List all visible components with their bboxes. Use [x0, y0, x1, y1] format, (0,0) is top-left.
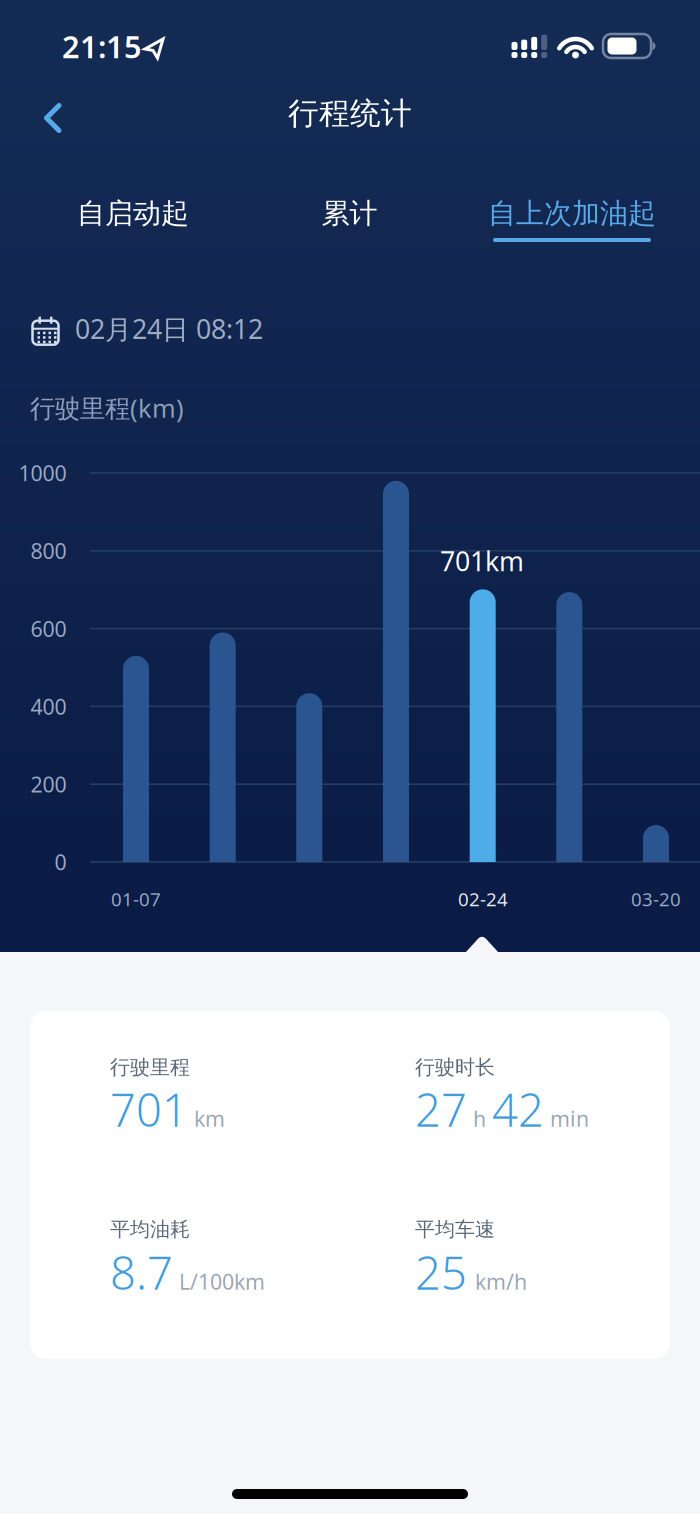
staticText: 平均车速: [415, 1217, 495, 1242]
staticText: 自启动起: [77, 196, 189, 231]
button[interactable]: 累计: [321, 196, 377, 231]
staticText: 行驶时长: [415, 1055, 495, 1080]
staticText: 0: [54, 848, 66, 876]
staticText: 累计: [321, 196, 377, 231]
staticText: km: [194, 1104, 225, 1132]
staticText: 8.7: [110, 1242, 173, 1302]
staticText: 400: [30, 692, 66, 720]
staticText: km/h: [475, 1267, 527, 1295]
staticText: min: [550, 1104, 589, 1132]
staticText: 自上次加油起: [488, 196, 656, 231]
staticText: 21:15: [62, 26, 142, 67]
staticText: 行驶里程: [110, 1055, 190, 1080]
button[interactable]: 自启动起: [77, 196, 189, 231]
staticText: 600: [30, 614, 66, 643]
staticText: 02-24: [458, 887, 508, 911]
staticText: 27: [415, 1079, 467, 1139]
staticText: 200: [30, 770, 66, 798]
staticText: 701: [110, 1079, 188, 1139]
staticText: 42: [492, 1079, 544, 1139]
button[interactable]: 02月24日 08:12: [0, 311, 700, 346]
staticText: 03-20: [631, 887, 681, 911]
staticText: 25: [415, 1242, 467, 1302]
staticText: 701km: [440, 543, 524, 579]
staticText: 行驶里程(km): [30, 391, 184, 425]
staticText: 1000: [18, 459, 66, 487]
staticText: 平均油耗: [110, 1217, 190, 1242]
staticText: 02月24日 08:12: [75, 311, 263, 346]
staticText: L/100km: [179, 1267, 265, 1295]
staticText: 800: [30, 537, 66, 565]
button[interactable]: Back: [43, 103, 63, 133]
button[interactable]: 自上次加油起: [488, 196, 656, 231]
staticText: 行程统计: [288, 95, 412, 132]
staticText: 01-07: [111, 887, 161, 911]
staticText: h: [473, 1104, 486, 1132]
